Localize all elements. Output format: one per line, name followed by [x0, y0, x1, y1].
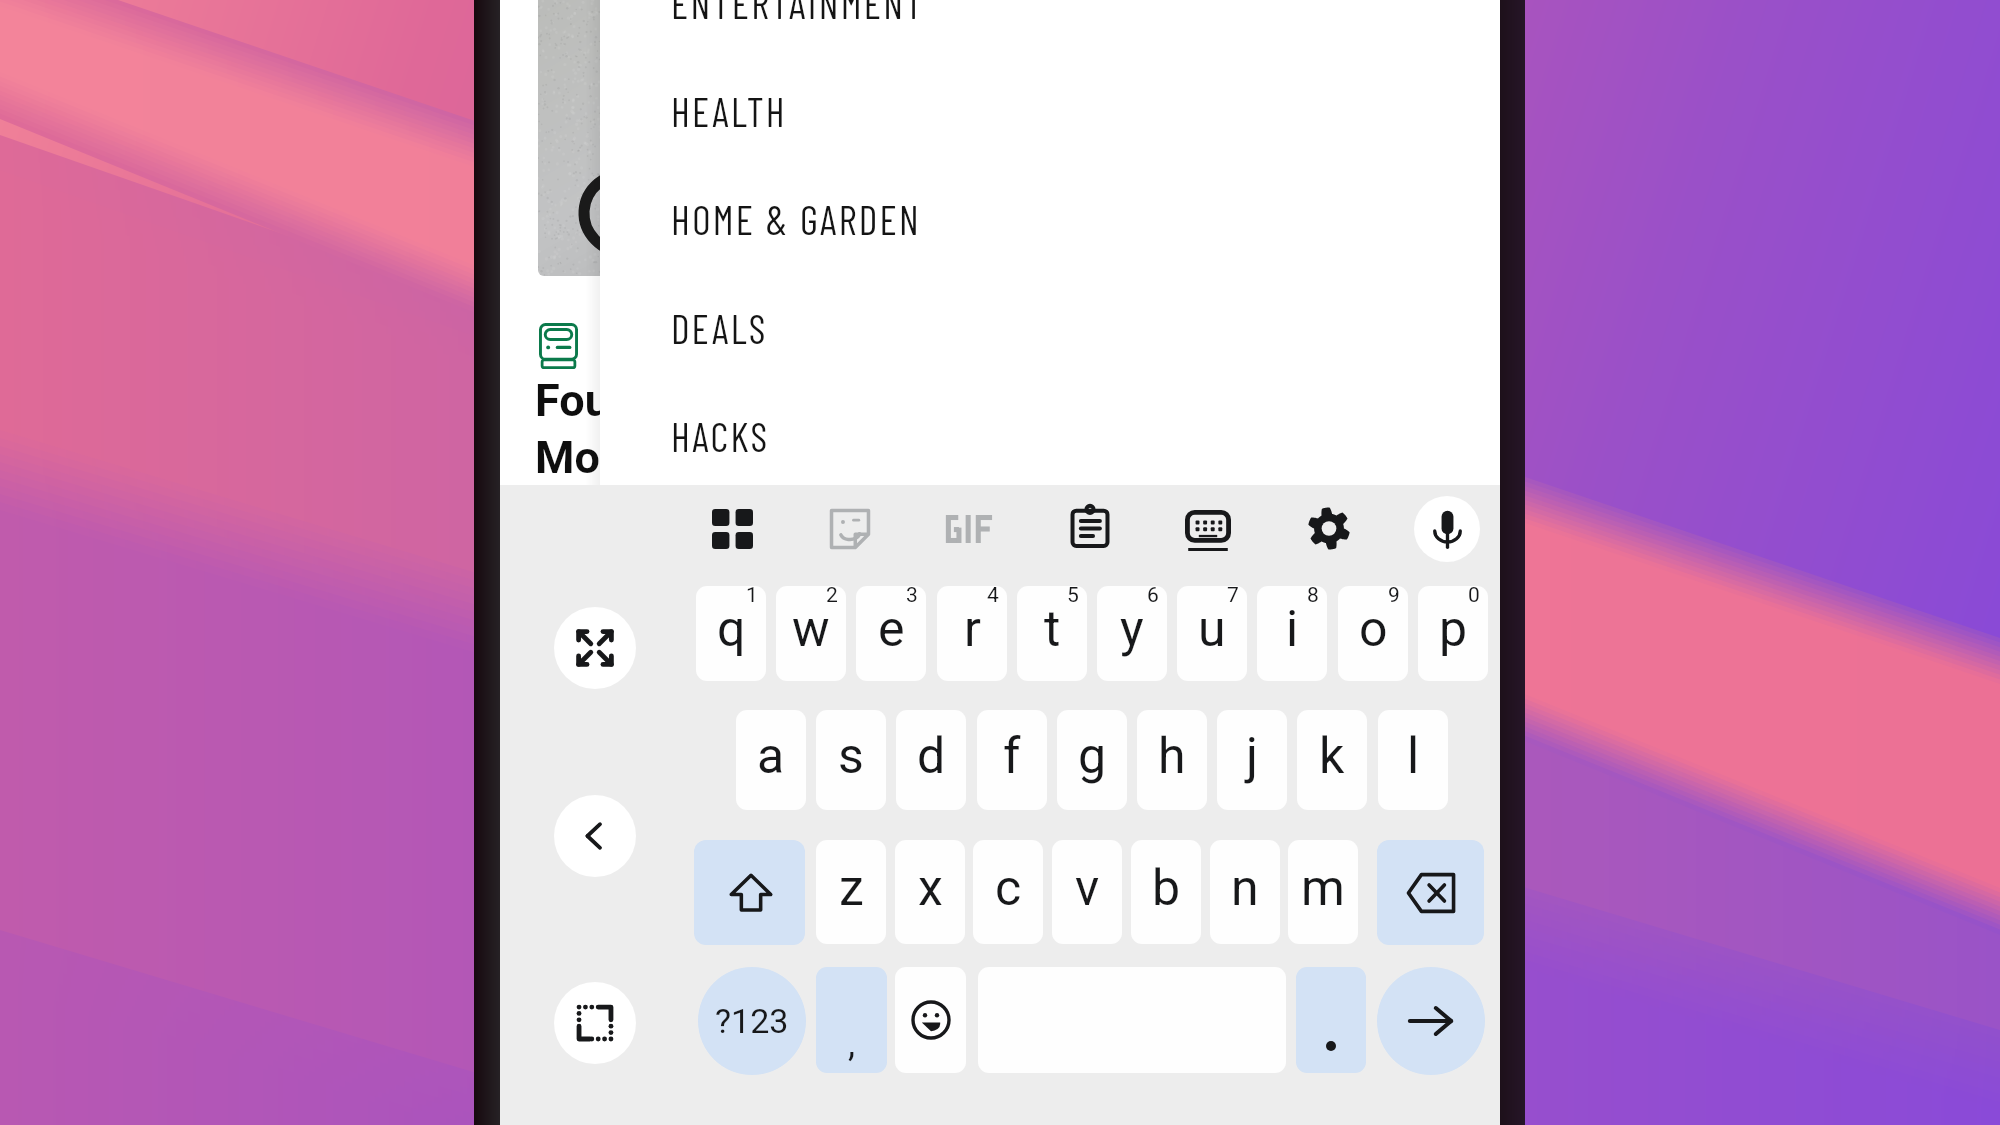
- button[interactable]: Stickers: [814, 493, 886, 565]
- staticText: d: [917, 727, 946, 786]
- button[interactable]: Shift: [694, 840, 805, 945]
- staticText: DEALS: [671, 304, 768, 352]
- staticText: m: [1301, 859, 1345, 918]
- button[interactable]: Clipboard: [1054, 490, 1126, 562]
- staticText: 5: [1067, 586, 1079, 608]
- staticText: b: [1152, 859, 1181, 918]
- staticText: r: [964, 600, 981, 659]
- staticText: ,: [848, 1023, 856, 1065]
- button[interactable]: j: [1217, 710, 1287, 810]
- button[interactable]: Keyboard layout: [1172, 495, 1244, 567]
- staticText: a: [757, 727, 785, 786]
- button[interactable]: f: [977, 710, 1047, 810]
- button[interactable]: GIF: [934, 493, 1006, 565]
- button[interactable]: Period: [1296, 967, 1366, 1073]
- button[interactable]: ?123: [698, 967, 806, 1075]
- staticText: p: [1439, 600, 1468, 659]
- staticText: ENTERTAINMENT: [671, 0, 925, 27]
- button[interactable]: 7: [1177, 586, 1247, 681]
- staticText: y: [1120, 600, 1144, 659]
- button[interactable]: g: [1057, 710, 1127, 810]
- staticText: 3: [906, 586, 918, 608]
- staticText: q: [717, 600, 746, 659]
- button[interactable]: Enter: [1377, 967, 1485, 1075]
- button[interactable]: DEALS: [600, 274, 1500, 382]
- staticText: 2: [826, 586, 838, 608]
- button[interactable]: HOME & GARDEN: [600, 165, 1500, 273]
- staticText: z: [839, 859, 864, 918]
- button[interactable]: 9: [1338, 586, 1408, 681]
- button[interactable]: Expand keyboard: [554, 607, 636, 689]
- button[interactable]: Select: [554, 982, 636, 1064]
- button[interactable]: 6: [1097, 586, 1167, 681]
- button[interactable]: v: [1052, 840, 1122, 944]
- button[interactable]: 2: [776, 586, 846, 681]
- button[interactable]: d: [896, 710, 966, 810]
- button[interactable]: Settings: [1293, 492, 1365, 564]
- staticText: HACKS: [671, 412, 770, 460]
- staticText: Found Money: [535, 374, 672, 484]
- button[interactable]: c: [973, 840, 1043, 944]
- button[interactable]: x: [895, 840, 965, 944]
- button[interactable]: Apps: [696, 493, 768, 565]
- button[interactable]: z: [816, 840, 886, 944]
- staticText: 0: [1468, 586, 1480, 608]
- button[interactable]: k: [1297, 710, 1367, 810]
- button[interactable]: 0: [1418, 586, 1488, 681]
- staticText: 4: [987, 586, 999, 608]
- staticText: j: [1246, 727, 1258, 786]
- staticText: 1: [746, 586, 758, 608]
- staticText: v: [1075, 859, 1100, 918]
- button[interactable]: a: [736, 710, 806, 810]
- button[interactable]: Comma: [816, 967, 887, 1073]
- button[interactable]: b: [1131, 840, 1201, 944]
- button[interactable]: s: [816, 710, 886, 810]
- button[interactable]: HEALTH: [600, 57, 1500, 165]
- staticText: s: [838, 727, 864, 786]
- staticText: f: [1003, 727, 1021, 786]
- staticText: 8: [1307, 586, 1319, 608]
- staticText: e: [878, 600, 905, 659]
- staticText: x: [918, 859, 943, 918]
- staticText: k: [1319, 727, 1345, 786]
- staticText: ?123: [715, 1001, 789, 1041]
- staticText: w: [792, 600, 830, 659]
- staticText: 7: [1227, 586, 1239, 608]
- button[interactable]: Voice input: [1414, 496, 1480, 562]
- staticText: c: [995, 859, 1022, 918]
- button[interactable]: HACKS: [600, 382, 1500, 490]
- staticText: 6: [1147, 586, 1159, 608]
- button[interactable]: Emoji: [895, 967, 966, 1073]
- button[interactable]: 4: [937, 586, 1007, 681]
- staticText: HOME & GARDEN: [671, 195, 921, 243]
- staticText: n: [1231, 859, 1259, 918]
- button[interactable]: Previous: [554, 795, 636, 877]
- button[interactable]: l: [1378, 710, 1448, 810]
- button[interactable]: h: [1137, 710, 1207, 810]
- button[interactable]: n: [1210, 840, 1280, 944]
- staticText: i: [1286, 600, 1299, 659]
- button[interactable]: 3: [856, 586, 926, 681]
- staticText: t: [1044, 600, 1061, 659]
- staticText: o: [1359, 600, 1388, 659]
- button[interactable]: 8: [1257, 586, 1327, 681]
- button[interactable]: Backspace: [1377, 840, 1484, 945]
- button[interactable]: 1: [696, 586, 766, 681]
- staticText: l: [1407, 727, 1420, 786]
- staticText: u: [1198, 600, 1226, 659]
- button[interactable]: 5: [1017, 586, 1087, 681]
- staticText: h: [1158, 727, 1186, 786]
- staticText: g: [1078, 727, 1107, 786]
- button[interactable]: m: [1288, 840, 1358, 944]
- button[interactable]: ENTERTAINMENT: [600, 0, 1500, 57]
- staticText: HEALTH: [671, 87, 788, 135]
- staticText: 9: [1388, 586, 1400, 608]
